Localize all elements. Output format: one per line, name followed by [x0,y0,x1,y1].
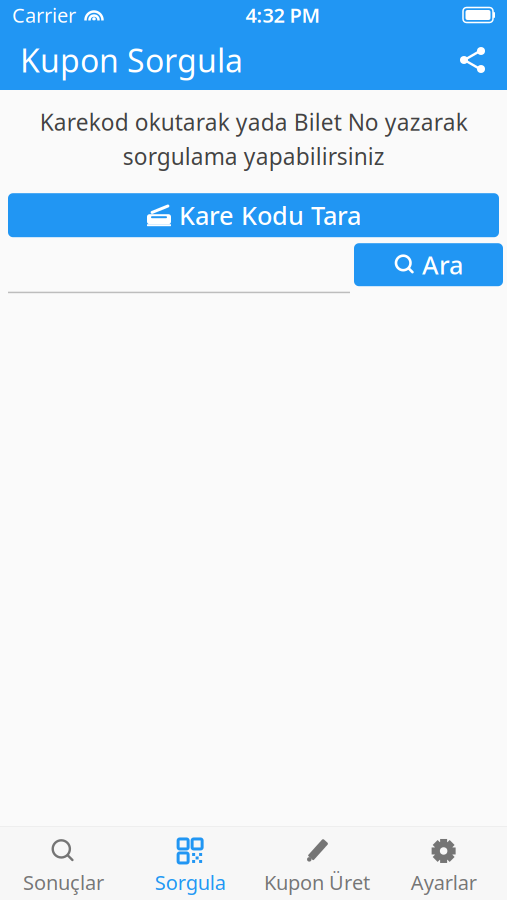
staticText: Ara [422,248,463,281]
staticText: Ayarlar [411,869,477,896]
button[interactable]: Kare Kodu Tara [8,193,499,237]
staticText: Sorgula [155,869,226,896]
staticText: Kare Kodu Tara [179,198,361,232]
button[interactable]: Share [453,38,493,82]
staticText: Kupon Sorgula [20,39,243,81]
button[interactable]: Ayarlar [380,827,507,900]
staticText: 4:32 PM [245,2,320,28]
staticText: Carrier [12,2,76,28]
staticText: Sonuçlar [23,869,104,896]
staticText: Karekod okutarak yada Bilet No yazarak s… [39,107,467,171]
button[interactable]: Sonuçlar [0,827,127,900]
staticText: Kupon Üret [264,869,370,896]
button[interactable]: Ara [354,243,503,286]
button[interactable]: Kupon Üret [253,827,380,900]
button[interactable]: Sorgula [127,827,254,900]
